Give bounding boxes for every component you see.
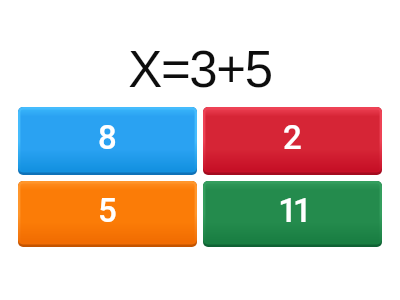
staticText: 5 [98, 191, 117, 230]
button[interactable]: 2 [203, 107, 382, 175]
staticText: 2 [283, 118, 302, 157]
button[interactable]: 8 [18, 107, 197, 175]
staticText: 8 [98, 118, 117, 157]
staticText: 11 [278, 191, 308, 230]
button[interactable]: 11 [203, 181, 382, 247]
button[interactable]: 5 [18, 181, 197, 247]
staticText: X=3+5 [128, 41, 272, 98]
